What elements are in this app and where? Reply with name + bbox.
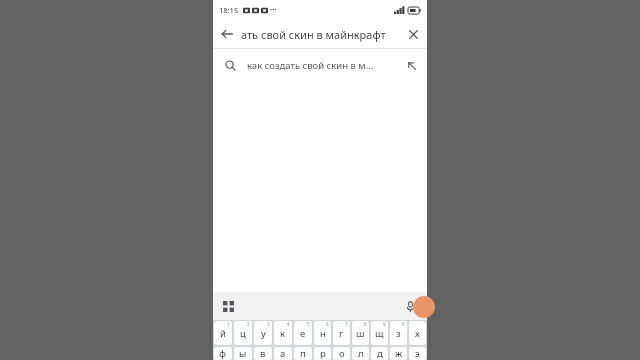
button[interactable]: Clipboard [219, 297, 237, 315]
staticText: р [320, 347, 326, 360]
staticText: ••• [270, 6, 277, 14]
staticText: как создать свой скин в м… [247, 59, 397, 72]
staticText: 18:15 [219, 5, 239, 15]
staticText: 2 [247, 321, 250, 327]
staticText: 8 [364, 321, 367, 327]
staticText: л [358, 347, 364, 360]
other: Recording indicator [413, 296, 435, 318]
button[interactable]: ф [214, 347, 232, 360]
button[interactable]: 8 [352, 321, 369, 345]
staticText: в [260, 347, 266, 360]
button[interactable]: 4 [274, 321, 292, 345]
button[interactable]: ж [390, 347, 407, 360]
button[interactable]: 1 [214, 321, 232, 345]
staticText: э [415, 347, 420, 360]
button[interactable]: Clear [399, 20, 427, 48]
staticText: у [261, 327, 266, 340]
button[interactable]: Voice input [401, 297, 419, 315]
staticText: о [339, 347, 345, 360]
button[interactable]: 9 [371, 321, 388, 345]
button[interactable]: р [314, 347, 331, 360]
staticText: г [339, 327, 344, 340]
button[interactable]: ы [234, 347, 252, 360]
button[interactable]: д [371, 347, 388, 360]
staticText: е [300, 327, 306, 340]
button[interactable]: 5 [294, 321, 312, 345]
staticText: 5 [307, 321, 310, 327]
staticText: 7 [345, 321, 348, 327]
button[interactable]: о [333, 347, 350, 360]
button[interactable]: 6 [314, 321, 331, 345]
staticText: ф [219, 347, 227, 360]
staticText: з [396, 327, 401, 340]
staticText: а [280, 347, 286, 360]
staticText: 0 [402, 321, 405, 327]
staticText: ц [240, 327, 246, 340]
button[interactable]: Insert suggestion [397, 49, 427, 82]
button[interactable]: э [409, 347, 426, 360]
button[interactable]: 0 [390, 321, 407, 345]
staticText: й [220, 327, 226, 340]
staticText: к [280, 327, 286, 340]
staticText: 3 [267, 321, 270, 327]
button[interactable]: х [409, 321, 426, 345]
staticText: п [300, 347, 306, 360]
button[interactable]: 2 [234, 321, 252, 345]
staticText: 9 [383, 321, 386, 327]
staticText: щ [375, 327, 384, 340]
button[interactable]: п [294, 347, 312, 360]
staticText: 6 [326, 321, 329, 327]
button[interactable]: а [274, 347, 292, 360]
staticText: vRecorder [373, 339, 409, 349]
button[interactable]: Back [213, 20, 241, 48]
staticText: х [415, 327, 420, 340]
button[interactable]: 3 [254, 321, 272, 345]
staticText: ы [239, 347, 247, 360]
staticText: 4 [287, 321, 290, 327]
staticText: ж [395, 347, 403, 360]
button[interactable]: в [254, 347, 272, 360]
staticText: ать свой скин в майнкрафт [241, 27, 399, 42]
button[interactable]: л [352, 347, 369, 360]
staticText: 1 [227, 321, 230, 327]
staticText: н [320, 327, 326, 340]
staticText: д [377, 347, 383, 360]
button[interactable]: 7 [333, 321, 350, 345]
button[interactable]: как создать свой скин в м… [213, 49, 427, 82]
staticText: ш [356, 327, 365, 340]
